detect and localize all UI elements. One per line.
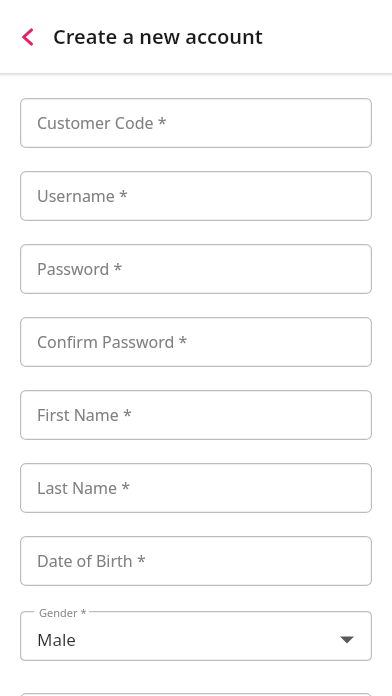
- staticText: Customer Code *: [37, 112, 167, 134]
- staticText: Gender *: [39, 605, 87, 620]
- staticText: Last Name *: [37, 477, 131, 499]
- button[interactable]: Last Name *: [20, 463, 372, 513]
- staticText: Create a new account: [53, 23, 263, 50]
- staticText: Confirm Password *: [37, 331, 188, 353]
- staticText: Username *: [37, 185, 128, 207]
- button[interactable]: Back: [8, 17, 48, 57]
- button[interactable]: Confirm Password *: [20, 317, 372, 367]
- button[interactable]: Gender *: [20, 611, 372, 661]
- other: Open gender dropdown: [340, 632, 354, 646]
- button[interactable]: Username *: [20, 171, 372, 221]
- staticText: Password *: [37, 258, 123, 280]
- staticText: Date of Birth *: [37, 550, 146, 572]
- staticText: Male: [37, 628, 76, 651]
- button[interactable]: First Name *: [20, 390, 372, 440]
- button[interactable]: Customer Code *: [20, 98, 372, 148]
- button[interactable]: Date of Birth *: [20, 536, 372, 586]
- staticText: First Name *: [37, 404, 132, 426]
- button[interactable]: [20, 693, 372, 696]
- button[interactable]: Password *: [20, 244, 372, 294]
